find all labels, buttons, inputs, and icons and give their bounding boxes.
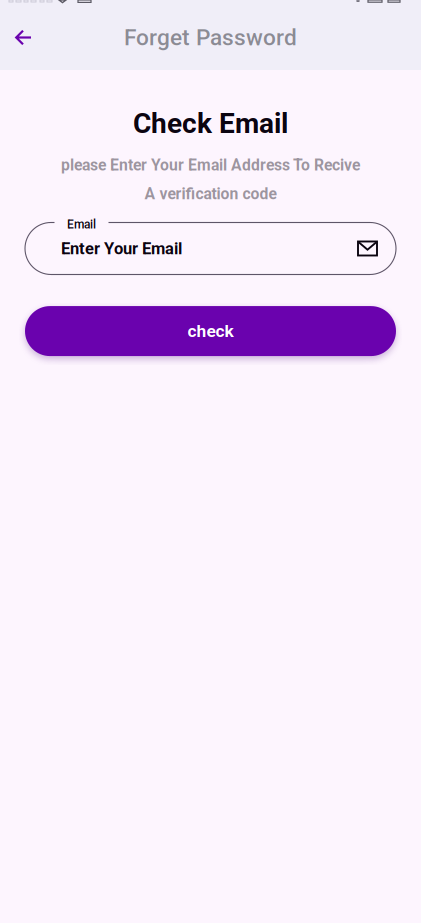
- staticText: Forget Password: [124, 24, 297, 51]
- button[interactable]: check: [25, 306, 396, 356]
- staticText: Email: [67, 217, 96, 232]
- staticText: Enter Your Email: [61, 239, 182, 258]
- staticText: A verification code: [144, 185, 276, 203]
- staticText: please Enter Your Email Address To Reciv…: [61, 156, 360, 174]
- staticText: Check Email: [133, 107, 288, 140]
- button[interactable]: Back: [0, 17, 44, 57]
- staticText: check: [187, 321, 233, 341]
